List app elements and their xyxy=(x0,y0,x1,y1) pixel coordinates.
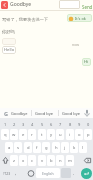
button[interactable]: l xyxy=(79,142,87,153)
button[interactable]: p xyxy=(84,129,92,140)
staticText: n xyxy=(59,158,62,164)
button[interactable]: d xyxy=(24,142,32,153)
button[interactable]: x xyxy=(19,155,27,166)
staticText: 8 xyxy=(69,122,72,127)
button[interactable]: Good bye xyxy=(33,108,55,118)
staticText: v xyxy=(41,158,44,164)
staticText: e xyxy=(22,132,25,138)
button[interactable]: r xyxy=(28,129,36,140)
button[interactable]: 0 xyxy=(84,120,92,128)
staticText: g xyxy=(45,145,48,151)
button[interactable]: f xyxy=(33,142,41,153)
button[interactable]: c xyxy=(28,155,36,166)
button[interactable]: Hi xyxy=(82,58,91,66)
button[interactable]: 9 xyxy=(75,120,83,128)
staticText: t xyxy=(41,132,43,138)
button[interactable]: 8 xyxy=(66,120,74,128)
button[interactable]: 2 xyxy=(10,120,18,128)
button[interactable]: Hello xyxy=(2,46,16,54)
staticText: j xyxy=(64,145,66,151)
button[interactable] xyxy=(83,109,91,117)
button[interactable] xyxy=(83,155,92,166)
button[interactable]: Goodbye xyxy=(10,108,28,118)
button[interactable]: w xyxy=(10,129,18,140)
staticText: y xyxy=(50,132,53,138)
staticText: c xyxy=(31,158,34,164)
button[interactable]: m xyxy=(66,155,74,166)
staticText: s xyxy=(17,145,20,151)
staticText: 3 xyxy=(22,122,25,127)
staticText: f xyxy=(36,145,38,151)
button[interactable]: Send xyxy=(81,3,93,10)
button[interactable]: o xyxy=(75,129,83,140)
staticText: d xyxy=(27,145,30,151)
button[interactable]: ?123 xyxy=(1,168,12,178)
button[interactable]: u xyxy=(56,129,64,140)
staticText: G xyxy=(4,110,8,117)
staticText: Goodbye xyxy=(10,1,32,8)
button[interactable]: j xyxy=(61,142,69,153)
staticText: x xyxy=(22,158,25,164)
staticText: 2 xyxy=(13,122,16,127)
button[interactable]: 1 xyxy=(1,120,9,128)
button[interactable]: 3 xyxy=(19,120,27,128)
button[interactable]: z xyxy=(10,155,18,166)
staticText: 6 xyxy=(50,122,53,127)
button[interactable] xyxy=(81,168,92,179)
button[interactable]: t xyxy=(38,129,46,140)
staticText: w xyxy=(12,132,16,138)
button[interactable]: Good bye xyxy=(60,108,82,118)
button[interactable]: q xyxy=(1,129,9,140)
button[interactable]: n xyxy=(56,155,64,166)
button[interactable]: a xyxy=(5,142,13,153)
staticText: It's ok xyxy=(75,16,86,21)
staticText: 5 xyxy=(41,122,44,127)
button[interactable]: s xyxy=(14,142,22,153)
staticText: now xyxy=(72,42,80,47)
staticText: ?123 xyxy=(3,171,11,175)
staticText: k xyxy=(73,145,76,151)
button[interactable]: 4 xyxy=(28,120,36,128)
staticText: 7 xyxy=(59,122,62,127)
staticText: , xyxy=(15,170,17,176)
button[interactable]: g xyxy=(42,142,50,153)
staticText: z xyxy=(13,158,15,164)
button[interactable] xyxy=(27,169,35,178)
staticText: a xyxy=(8,145,11,151)
staticText: i xyxy=(69,132,71,138)
staticText: o xyxy=(78,132,81,138)
button[interactable]: , xyxy=(13,168,19,178)
staticText: u xyxy=(59,132,62,138)
staticText: p xyxy=(87,132,90,138)
button[interactable]: y xyxy=(47,129,55,140)
staticText: h xyxy=(55,145,58,151)
button[interactable]: . xyxy=(71,168,77,178)
staticText: Good bye xyxy=(35,111,53,116)
button[interactable]: k xyxy=(70,142,78,153)
staticText: Hi xyxy=(84,59,89,65)
button[interactable]: e xyxy=(19,129,27,140)
button[interactable]: b xyxy=(47,155,55,166)
button[interactable]: 6 xyxy=(47,120,55,128)
button[interactable] xyxy=(1,1,8,9)
button[interactable]: English xyxy=(36,168,60,178)
staticText: b xyxy=(50,158,53,164)
button[interactable] xyxy=(59,0,80,9)
button[interactable]: h xyxy=(52,142,60,153)
button[interactable]: v xyxy=(38,155,46,166)
button[interactable]: 5 xyxy=(38,120,46,128)
staticText: l xyxy=(82,145,84,151)
button[interactable]: 7 xyxy=(56,120,64,128)
staticText: 9 xyxy=(78,122,81,127)
button[interactable]: i xyxy=(66,129,74,140)
staticText: 0 xyxy=(87,122,90,127)
staticText: r xyxy=(31,132,33,138)
staticText: Good bye xyxy=(62,111,80,116)
staticText: q xyxy=(4,132,7,138)
staticText: Goodbye xyxy=(11,111,28,116)
button[interactable] xyxy=(1,155,10,166)
staticText: 写错了，我要块去洗一下 xyxy=(2,17,49,22)
button[interactable]: It's ok xyxy=(67,14,92,22)
staticText: English xyxy=(42,171,54,176)
